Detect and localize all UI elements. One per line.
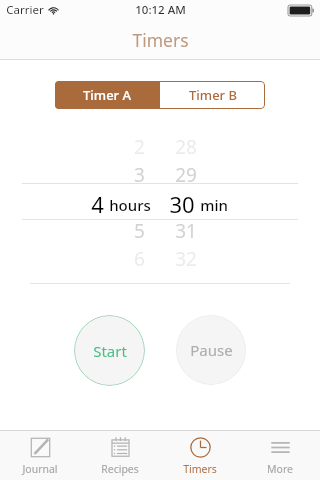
staticText: Pause xyxy=(190,340,233,360)
staticText: 30 xyxy=(169,189,195,217)
staticText: Carrier xyxy=(6,2,44,18)
staticText: Timer B xyxy=(189,86,237,104)
staticText: Journal xyxy=(22,462,58,476)
other: Timers xyxy=(189,436,212,459)
staticText: 10:12 AM xyxy=(135,2,186,18)
staticText: 4 xyxy=(91,189,104,217)
staticText: 32 xyxy=(175,246,197,272)
button[interactable]: More xyxy=(240,431,320,480)
staticText: More xyxy=(267,462,293,476)
staticText: 6 xyxy=(134,246,145,272)
staticText: 29 xyxy=(175,162,197,188)
staticText: 3 xyxy=(134,162,145,188)
button[interactable]: Recipes xyxy=(80,431,160,480)
button[interactable]: Start xyxy=(74,315,145,386)
button[interactable]: Timer A xyxy=(55,81,159,109)
staticText: Timers xyxy=(132,28,189,52)
staticText: min xyxy=(200,195,228,215)
staticText: Start xyxy=(93,341,127,361)
staticText: 28 xyxy=(175,134,197,160)
staticText: Recipes xyxy=(101,462,139,476)
staticText: hours xyxy=(109,195,151,215)
staticText: Timers xyxy=(183,462,217,476)
button[interactable]: Journal xyxy=(0,431,80,480)
staticText: 2 xyxy=(134,134,145,160)
button[interactable]: Pause xyxy=(176,315,246,385)
button[interactable]: Timer B xyxy=(160,81,265,109)
staticText: 5 xyxy=(134,218,145,244)
staticText: 31 xyxy=(175,218,197,244)
button[interactable]: Timers xyxy=(160,431,240,480)
staticText: Timer A xyxy=(83,86,131,104)
